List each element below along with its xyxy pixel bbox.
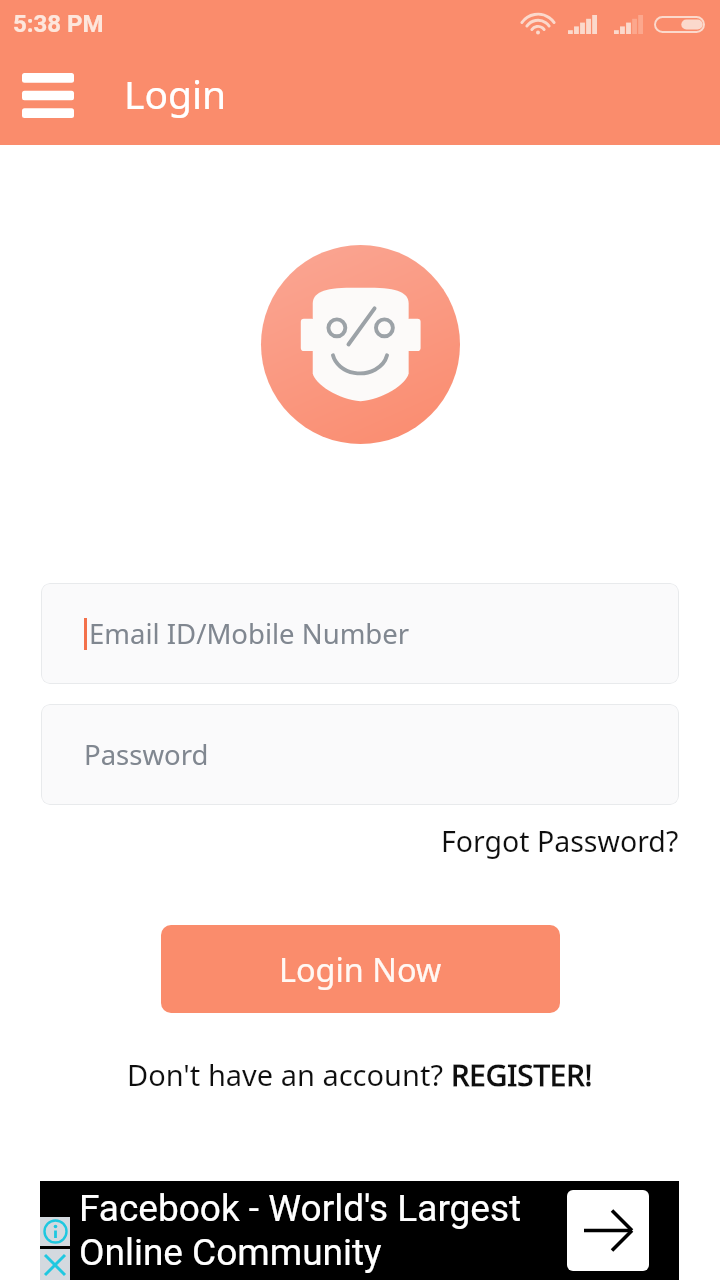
staticText: Forgot Password?: [441, 822, 679, 861]
staticText: REGISTER!: [451, 1054, 593, 1094]
button[interactable]: REGISTER!: [451, 1054, 593, 1094]
button[interactable]: Email ID/Mobile Number: [41, 583, 679, 684]
button[interactable]: Close ad: [40, 1249, 70, 1280]
staticText: Facebook - World's Largest: [79, 1187, 522, 1230]
button[interactable]: Open navigation menu: [12, 61, 84, 133]
button[interactable]: Password: [41, 704, 679, 805]
button[interactable]: Open advertisement: [567, 1190, 649, 1271]
staticText: Online Community: [79, 1231, 382, 1274]
staticText: Login: [124, 67, 227, 120]
staticText: Login Now: [279, 947, 442, 991]
staticText: Email ID/Mobile Number: [89, 615, 410, 652]
button[interactable]: Ad information: [40, 1217, 70, 1246]
staticText: Don't have an account?: [127, 1055, 451, 1094]
staticText: Password: [84, 736, 209, 773]
staticText: 5:38 PM: [13, 10, 104, 38]
button[interactable]: Forgot Password?: [441, 820, 679, 863]
button[interactable]: Login Now: [161, 925, 560, 1013]
